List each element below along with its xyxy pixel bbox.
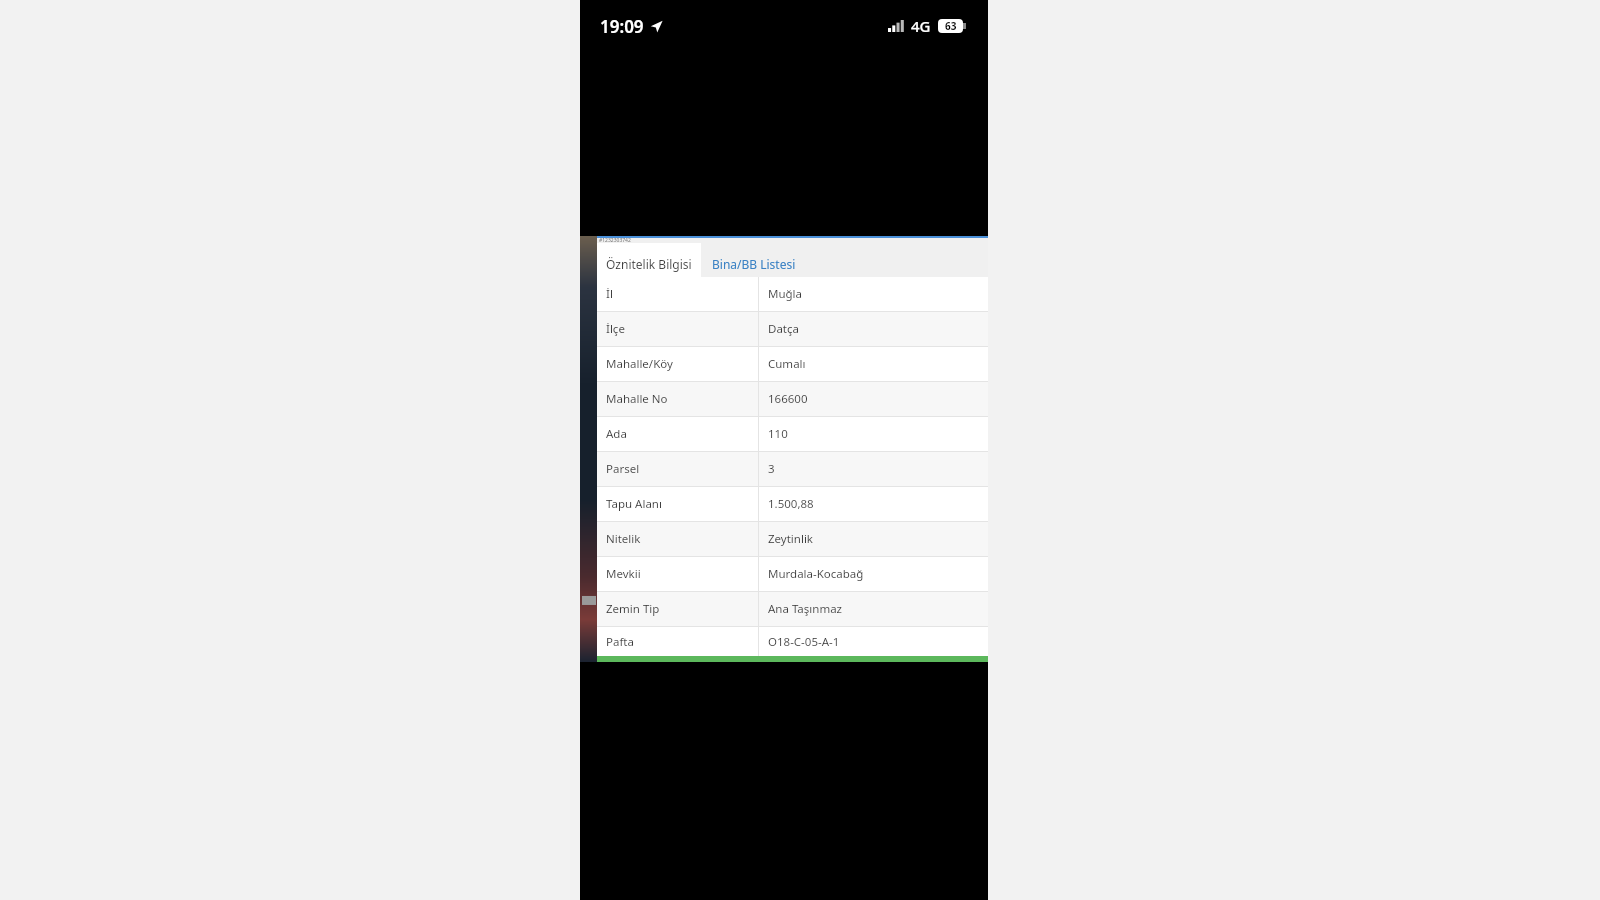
staticText: Cumalı: [768, 356, 806, 372]
staticText: İl: [606, 286, 613, 302]
staticText: Mahalle No: [606, 391, 668, 407]
button[interactable]: Mahalle No: [597, 382, 988, 417]
staticText: Zeytinlik: [768, 531, 813, 547]
button[interactable]: Ada: [597, 417, 988, 452]
button[interactable]: Bina/BB Listesi: [701, 243, 806, 284]
staticText: Mahalle/Köy: [606, 356, 673, 372]
staticText: Bina/BB Listesi: [712, 256, 796, 272]
button[interactable]: Pafta: [597, 627, 988, 656]
staticText: 166600: [768, 391, 808, 407]
staticText: Murdala-Kocabağ: [768, 566, 864, 582]
staticText: Mevkii: [606, 566, 641, 582]
staticText: Muğla: [768, 286, 803, 302]
button[interactable]: Öznitelik Bilgisi: [597, 243, 701, 284]
button[interactable]: İlçe: [597, 312, 988, 347]
staticText: Ana Taşınmaz: [768, 601, 843, 617]
staticText: Pafta: [606, 634, 634, 650]
staticText: #1232303742: [599, 237, 631, 244]
staticText: 3: [768, 461, 775, 477]
staticText: Tapu Alanı: [606, 496, 662, 512]
staticText: 1.500,88: [768, 496, 814, 512]
staticText: 63: [945, 19, 957, 33]
button[interactable]: İl: [597, 277, 988, 312]
button[interactable]: Parsel: [597, 452, 988, 487]
staticText: Parsel: [606, 461, 640, 477]
button[interactable]: Nitelik: [597, 522, 988, 557]
staticText: Zemin Tip: [606, 601, 660, 617]
staticText: Öznitelik Bilgisi: [606, 256, 692, 272]
staticText: Nitelik: [606, 531, 641, 547]
staticText: 110: [768, 426, 788, 442]
staticText: Datça: [768, 321, 799, 337]
button[interactable]: Tapu Alanı: [597, 487, 988, 522]
staticText: Ada: [606, 426, 627, 442]
button[interactable]: Mahalle/Köy: [597, 347, 988, 382]
staticText: O18-C-05-A-1: [768, 634, 840, 650]
staticText: 19:09: [600, 15, 644, 38]
staticText: 4G: [911, 16, 931, 36]
button[interactable]: Zemin Tip: [597, 592, 988, 627]
staticText: İlçe: [606, 321, 625, 337]
button[interactable]: Mevkii: [597, 557, 988, 592]
